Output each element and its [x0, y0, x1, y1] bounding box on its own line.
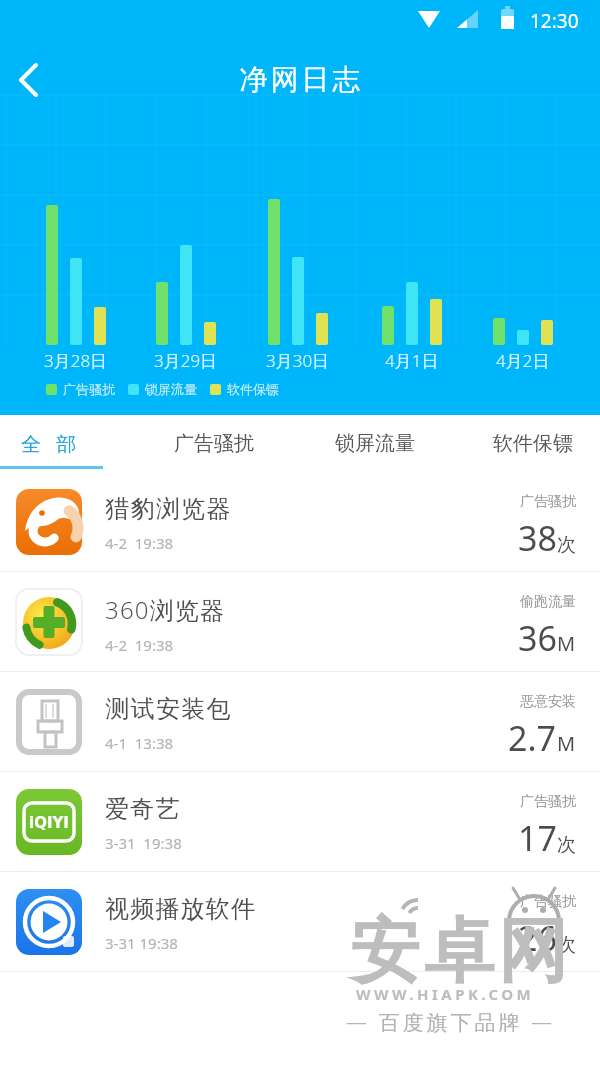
staticText: M	[557, 630, 576, 657]
staticText: 17	[518, 815, 557, 861]
staticText: 36	[518, 615, 557, 661]
button[interactable]: 360浏览器	[0, 572, 600, 671]
staticText: 次	[557, 533, 576, 557]
staticText: 爱奇艺	[105, 794, 181, 824]
staticText: 12:30	[530, 8, 579, 34]
staticText: 3-31 19:38	[105, 933, 178, 953]
button[interactable]: iQIYI	[0, 772, 600, 871]
button[interactable]: 视频播放软件	[0, 872, 600, 971]
staticText: 锁屏流量	[145, 381, 197, 397]
staticText: 软件保镖	[493, 431, 573, 456]
button[interactable]: 软件保镖	[473, 415, 593, 472]
button[interactable]: 锁屏流量	[315, 415, 435, 472]
staticText: 3月29日	[154, 349, 218, 372]
staticText: iQIYI	[29, 814, 69, 831]
staticText: 猎豹浏览器	[105, 494, 231, 524]
staticText: 广告骚扰	[520, 493, 576, 511]
button[interactable]: 测试安装包	[0, 672, 600, 771]
staticText: 软件保镖	[227, 381, 279, 397]
staticText: 次	[557, 833, 576, 857]
staticText: 2.7	[508, 715, 557, 761]
staticText: 360浏览器	[105, 593, 226, 626]
staticText: 4-2 19:38	[105, 533, 174, 553]
staticText: 3月28日	[44, 349, 108, 372]
staticText: 恶意安装	[520, 693, 576, 711]
button[interactable]	[10, 58, 50, 102]
staticText: 净网日志	[238, 62, 362, 97]
staticText: — 百度旗下品牌 —	[346, 1008, 555, 1037]
staticText: 4-1 13:38	[105, 733, 174, 753]
staticText: 26	[518, 915, 557, 961]
staticText: 广告骚扰	[520, 793, 576, 811]
button[interactable]: 广告骚扰	[154, 415, 274, 472]
staticText: 锁屏流量	[335, 431, 415, 456]
staticText: 广告骚扰	[520, 893, 576, 911]
staticText: 次	[557, 933, 576, 957]
staticText: 3-31 19:38	[105, 833, 182, 853]
staticText: 4-2 19:38	[105, 635, 174, 655]
staticText: 4月1日	[385, 349, 439, 372]
staticText: 安卓网	[348, 908, 570, 996]
button[interactable]: 全 部	[0, 415, 103, 472]
staticText: 视频播放软件	[105, 894, 257, 924]
staticText: 广告骚扰	[63, 381, 115, 397]
staticText: 3月30日	[266, 349, 330, 372]
staticText: 全 部	[21, 430, 82, 457]
staticText: 偷跑流量	[520, 593, 576, 611]
staticText: 4月2日	[496, 349, 550, 372]
button[interactable]: 猎豹浏览器	[0, 472, 600, 571]
staticText: 广告骚扰	[174, 431, 254, 456]
staticText: M	[557, 730, 576, 757]
staticText: WWW.HIAPK.COM	[356, 984, 535, 1004]
staticText: 测试安装包	[105, 694, 231, 724]
staticText: 38	[518, 515, 557, 561]
